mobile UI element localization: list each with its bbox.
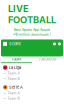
staticText: TODAY: [11, 57, 21, 61]
staticText: TOMORROW: [38, 57, 56, 61]
staticText: —: [3, 96, 6, 100]
staticText: Team A: [7, 91, 19, 95]
staticText: Team B: [7, 77, 19, 81]
staticText: Best Sports App Award: [14, 28, 50, 32]
staticText: La Liga: [9, 65, 21, 70]
staticText: ~10 million downloads !: [13, 32, 51, 36]
staticText: Scores: [9, 41, 21, 46]
staticText: —: [3, 71, 6, 75]
staticText: Team A: [7, 71, 19, 75]
staticText: —: [3, 77, 6, 81]
staticText: —: [3, 91, 6, 95]
staticText: LIVE FOOTBALL: [8, 3, 56, 26]
staticText: Serie A: [9, 85, 23, 90]
staticText: Team B: [7, 96, 19, 100]
